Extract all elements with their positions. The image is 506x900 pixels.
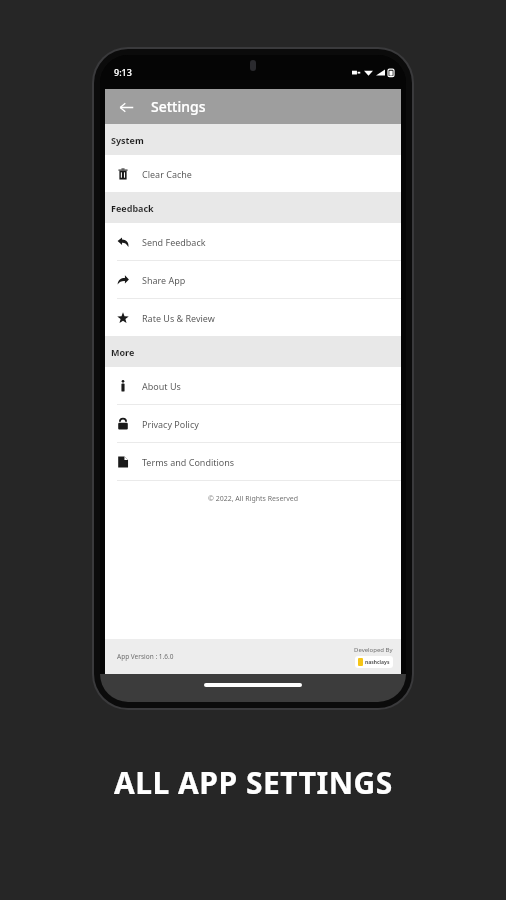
button[interactable]: About Us	[105, 367, 401, 404]
button[interactable]: Share App	[105, 261, 401, 298]
button[interactable]: Clear Cache	[105, 155, 401, 192]
button[interactable]: Privacy Policy	[105, 405, 401, 442]
staticText: © 2022, All Rights Reserved	[208, 494, 299, 504]
staticText: Share App	[142, 274, 186, 286]
staticText: Developed By	[354, 646, 393, 654]
button[interactable]: Back	[111, 92, 141, 122]
staticText: Settings	[151, 97, 206, 116]
staticText: nashclays	[365, 659, 390, 666]
staticText: Privacy Policy	[142, 418, 199, 430]
staticText: App Version : 1.6.0	[117, 652, 174, 661]
staticText: Rate Us & Review	[142, 312, 215, 324]
button[interactable]: Terms and Conditions	[105, 443, 401, 480]
button[interactable]: Send Feedback	[105, 223, 401, 260]
staticText: More	[111, 346, 135, 358]
staticText: System	[111, 134, 144, 146]
staticText: Clear Cache	[142, 168, 192, 180]
button[interactable]: nashclays	[355, 656, 393, 668]
staticText: About Us	[142, 380, 181, 392]
staticText: 9:13	[114, 66, 132, 78]
staticText: Send Feedback	[142, 236, 206, 248]
staticText: ALL APP SETTINGS	[114, 762, 393, 803]
staticText: Terms and Conditions	[142, 456, 235, 468]
button[interactable]: Rate Us & Review	[105, 299, 401, 336]
staticText: Feedback	[111, 202, 154, 214]
